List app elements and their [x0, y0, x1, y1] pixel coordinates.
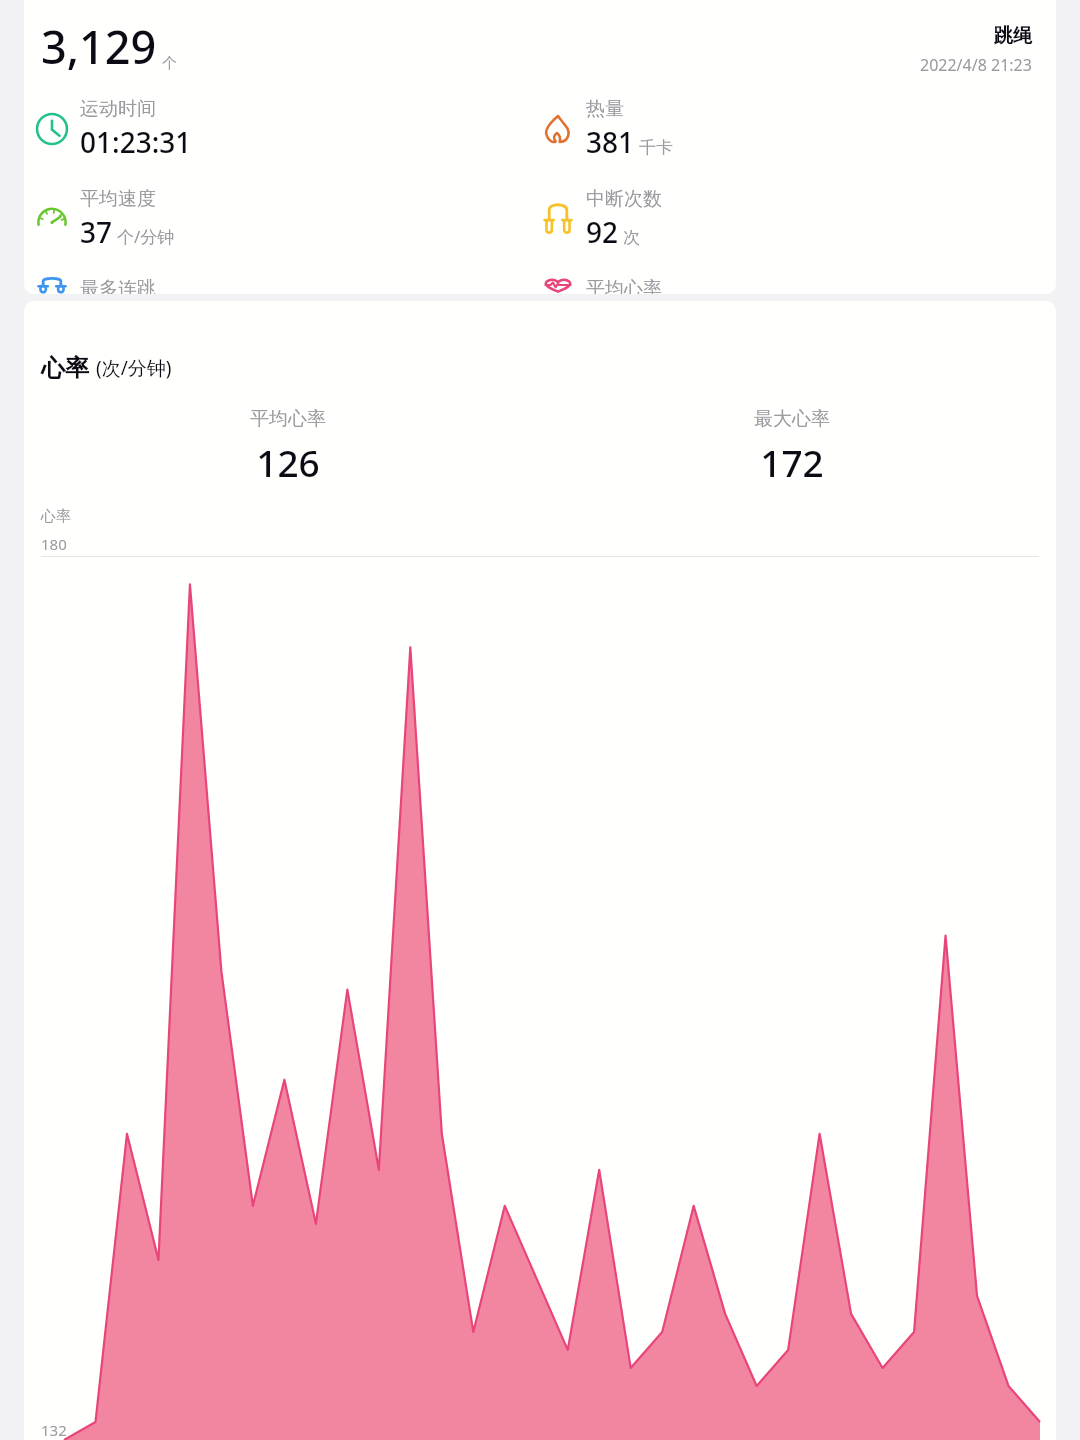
other: 平均心率: [540, 277, 576, 294]
staticText: 381: [586, 123, 635, 161]
staticText: 01:23:31: [80, 123, 192, 161]
staticText: (次/分钟): [96, 355, 172, 381]
staticText: 心率: [41, 507, 71, 526]
staticText: 2022/4/8 21:23: [920, 54, 1032, 76]
staticText: 126: [256, 437, 320, 487]
staticText: 跳绳: [994, 24, 1032, 48]
other: 最多连跳: [34, 277, 70, 294]
other: 运动时间: [34, 111, 70, 147]
staticText: 132: [41, 1420, 67, 1440]
staticText: 平均心率: [250, 407, 326, 431]
staticText: 180: [41, 534, 67, 554]
staticText: 心率: [41, 353, 89, 383]
other: 平均速度: [34, 201, 70, 237]
staticText: 3,129: [41, 16, 157, 77]
staticText: 平均心率: [586, 277, 662, 294]
staticText: 37: [80, 213, 113, 251]
staticText: 平均速度: [80, 187, 156, 211]
staticText: 千卡: [639, 137, 673, 158]
button[interactable]: 平均心率: [36, 405, 540, 489]
button[interactable]: 运动时间: [34, 97, 540, 161]
staticText: 运动时间: [80, 97, 156, 121]
other: 中断次数: [540, 201, 576, 237]
button[interactable]: 中断次数: [540, 187, 1056, 251]
staticText: 最大心率: [754, 407, 830, 431]
staticText: 次: [623, 227, 640, 248]
staticText: 172: [760, 437, 824, 487]
button[interactable]: 热量: [540, 97, 1056, 161]
staticText: 中断次数: [586, 187, 662, 211]
button[interactable]: 最多连跳: [34, 277, 540, 294]
button[interactable]: 平均心率: [540, 277, 1056, 294]
staticText: 热量: [586, 97, 624, 121]
button[interactable]: 最大心率: [540, 405, 1044, 489]
staticText: 最多连跳: [80, 277, 156, 294]
staticText: 92: [586, 213, 619, 251]
other: 热量: [540, 111, 576, 147]
staticText: 个: [162, 54, 177, 73]
button[interactable]: 平均速度: [34, 187, 540, 251]
staticText: 个/分钟: [117, 225, 175, 248]
